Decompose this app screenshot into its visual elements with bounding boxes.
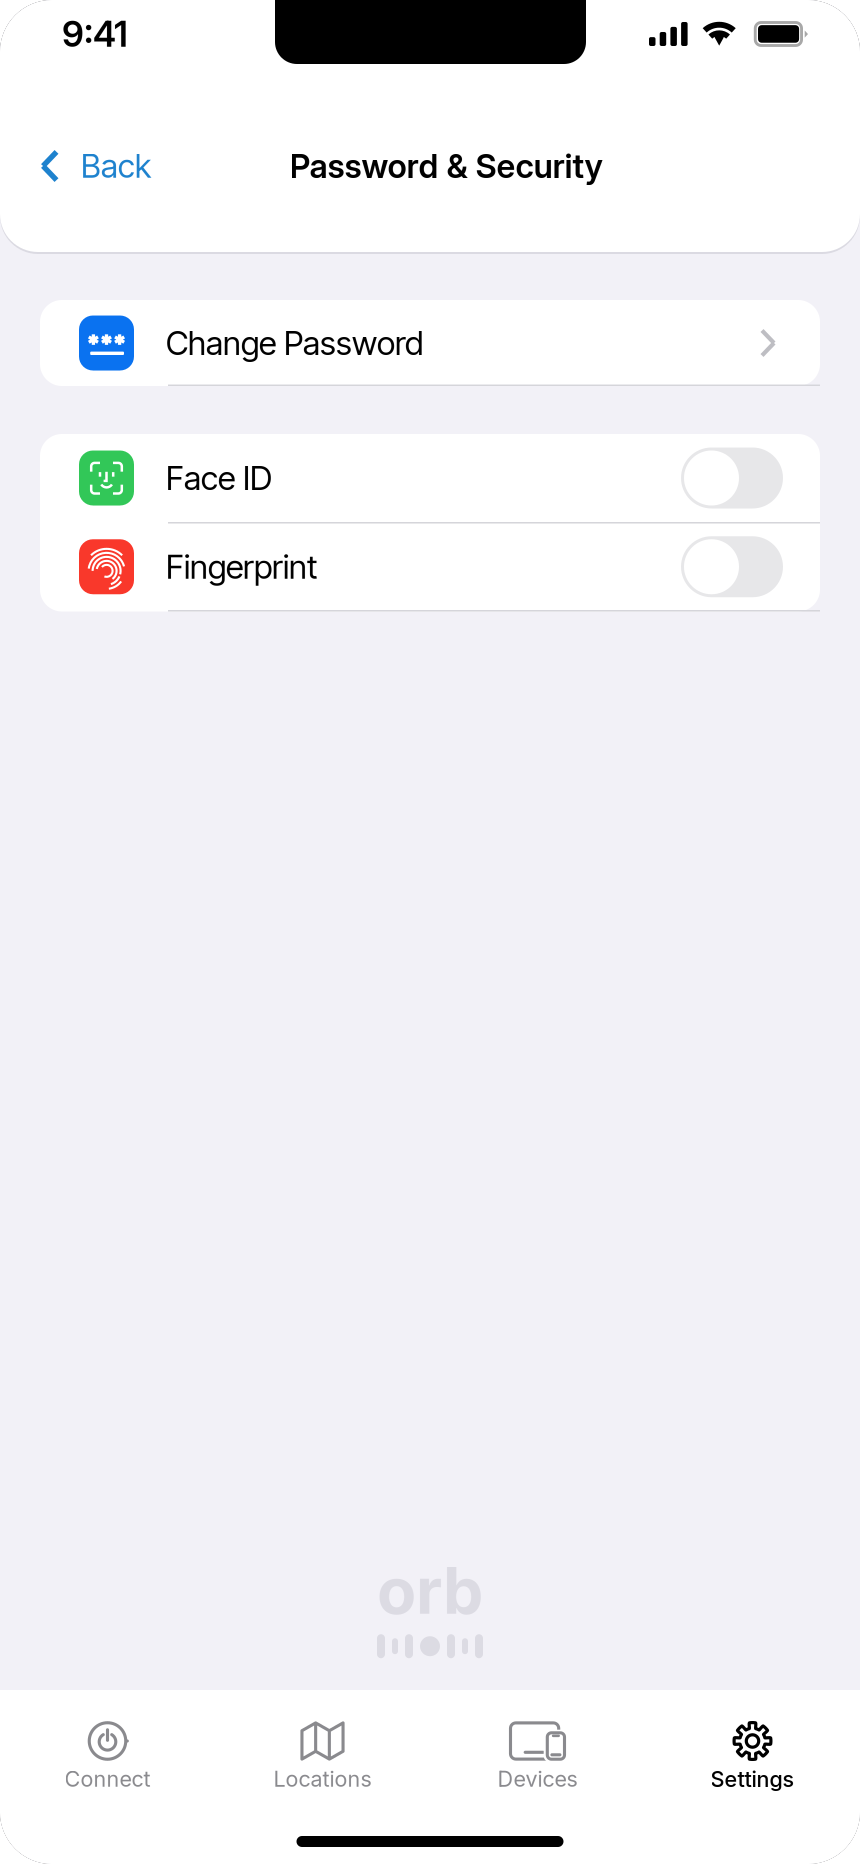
staticText: Settings: [710, 1766, 794, 1792]
staticText: Locations: [273, 1766, 371, 1792]
button[interactable]: Face ID: [40, 434, 820, 522]
button[interactable]: Fingerprint: [40, 523, 820, 610]
button[interactable]: Connect: [0, 1717, 215, 1796]
staticText: Connect: [64, 1766, 150, 1792]
button[interactable]: Settings: [645, 1717, 860, 1796]
staticText: orb: [377, 1552, 483, 1629]
button[interactable]: Change Password: [40, 300, 820, 386]
button[interactable]: Back: [0, 128, 230, 204]
staticText: Back: [81, 146, 151, 186]
staticText: Face ID: [166, 458, 272, 498]
staticText: Password & Security: [289, 146, 602, 186]
staticText: 9:41: [62, 13, 128, 55]
staticText: Change Password: [166, 323, 423, 363]
button[interactable]: Locations: [215, 1717, 430, 1796]
button[interactable]: Devices: [430, 1717, 645, 1796]
staticText: Devices: [497, 1766, 577, 1792]
staticText: Fingerprint: [166, 547, 317, 587]
